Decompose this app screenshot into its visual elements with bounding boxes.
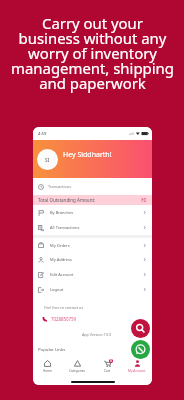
staticText: 4:59 <box>38 131 47 137</box>
staticText: My Address <box>50 257 72 262</box>
staticText: ₹0 <box>141 197 147 203</box>
button[interactable]: Transactions <box>38 178 152 195</box>
staticText: My Orders <box>50 243 70 248</box>
staticText: Home <box>43 369 53 373</box>
staticText: All Transactions <box>50 225 80 230</box>
staticText: Cart <box>104 369 111 373</box>
button[interactable]: 7028850759 <box>42 316 77 322</box>
staticText: 7028850759 <box>51 316 77 322</box>
button[interactable]: Home <box>33 360 62 373</box>
button[interactable]: My Orders <box>38 238 147 252</box>
staticText: By Branches <box>50 210 74 215</box>
button[interactable]: 0 <box>92 360 122 373</box>
staticText: Transactions <box>48 184 72 189</box>
button[interactable]: All Transactions <box>38 220 147 235</box>
staticText: Edit Account <box>50 272 74 277</box>
button[interactable]: My Account <box>122 360 152 373</box>
button[interactable]: Logout <box>38 282 147 297</box>
staticText: 0 <box>110 359 112 363</box>
staticText: Logout <box>50 287 64 292</box>
staticText: App Version 10.0 <box>82 332 112 337</box>
staticText: Feel free to contact us <box>44 305 84 310</box>
button[interactable]: Edit Account <box>38 267 147 282</box>
staticText: Popular Links <box>38 346 66 352</box>
staticText: Hey Siddharth! <box>63 150 112 160</box>
button[interactable]: WhatsApp <box>131 340 150 359</box>
staticText: SI <box>45 157 50 163</box>
button[interactable]: Search <box>131 319 150 338</box>
button[interactable]: My Address <box>38 252 147 267</box>
staticText: My Account <box>128 369 146 373</box>
button[interactable]: Categories <box>62 360 92 373</box>
staticText: Carry out your business without any worr… <box>11 13 174 93</box>
button[interactable]: By Branches <box>38 205 147 220</box>
staticText: Total Outstanding Amount: <box>38 197 96 203</box>
staticText: Categories <box>69 369 86 373</box>
